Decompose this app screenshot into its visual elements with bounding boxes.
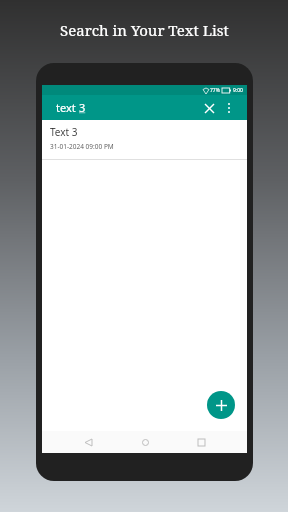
staticText: 31-01-2024 09:00 PM (50, 142, 114, 151)
staticText: 9:00 (233, 87, 243, 94)
button[interactable]: Add note (207, 391, 235, 419)
button[interactable]: Back (78, 432, 98, 452)
button[interactable]: Text 3 (42, 120, 247, 159)
staticText: 3 (79, 100, 86, 115)
button[interactable]: Close search (199, 98, 219, 118)
button[interactable]: Recents (191, 432, 211, 452)
button[interactable]: More options (219, 98, 239, 118)
staticText: Text 3 (50, 125, 78, 139)
button[interactable]: Home (135, 432, 155, 452)
staticText: 77% (210, 87, 220, 94)
staticText: Search in Your Text List (60, 20, 229, 40)
staticText: text (56, 100, 79, 115)
